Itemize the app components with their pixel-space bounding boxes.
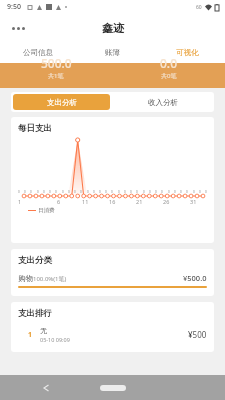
button[interactable]: 收入分析 <box>112 92 214 112</box>
staticText: 0 <box>74 190 76 194</box>
staticText: 支出分析 <box>47 98 77 107</box>
staticText: 0 <box>118 190 120 194</box>
staticText: 0 <box>30 190 32 194</box>
staticText: 0 <box>93 190 95 194</box>
staticText: 0 <box>168 190 170 194</box>
staticText: 0 <box>180 190 182 194</box>
staticText: 0 <box>24 190 26 194</box>
button[interactable]: 可视化 <box>150 42 225 63</box>
staticText: 0 <box>199 190 201 194</box>
staticText: 0 <box>161 190 163 194</box>
staticText: 0 <box>205 190 207 194</box>
staticText: 无 <box>40 326 47 335</box>
staticText: 0 <box>124 190 126 194</box>
staticText: 11 <box>82 198 89 205</box>
staticText: 0 <box>155 190 157 194</box>
staticText: 0 <box>136 190 138 194</box>
staticText: 05-10 09:09 <box>40 336 70 343</box>
button[interactable]: 账簿 <box>75 42 150 63</box>
staticText: 1 <box>18 198 22 205</box>
staticText: 0 <box>99 190 101 194</box>
staticText: 0 <box>143 190 145 194</box>
staticText: 账簿 <box>105 48 120 57</box>
staticText: 0 <box>80 190 82 194</box>
staticText: 0 <box>68 190 70 194</box>
staticText: 100.0%(1笔) <box>33 275 67 283</box>
staticText: 6 <box>57 198 61 205</box>
staticText: 每日支出 <box>18 123 52 134</box>
staticText: 16 <box>109 198 116 205</box>
staticText: 31 <box>190 198 197 205</box>
staticText: 500.0 <box>41 55 72 71</box>
staticText: 0 <box>62 190 64 194</box>
staticText: 公司信息 <box>23 48 53 57</box>
staticText: 0.0 <box>160 55 177 71</box>
button[interactable]: More options <box>8 18 28 38</box>
staticText: 购物 <box>18 274 33 283</box>
staticText: 0 <box>186 190 188 194</box>
staticText: 1 <box>28 330 33 340</box>
staticText: 日消费 <box>38 207 55 214</box>
staticText: 0 <box>43 190 45 194</box>
staticText: 0 <box>49 190 51 194</box>
button[interactable]: Back <box>40 381 54 395</box>
staticText: 0 <box>18 190 20 194</box>
staticText: 0 <box>111 190 113 194</box>
staticText: 0 <box>55 190 57 194</box>
staticText: 0 <box>174 190 176 194</box>
staticText: 0 <box>130 190 132 194</box>
staticText: 60 <box>196 4 202 11</box>
button[interactable]: Home <box>100 385 126 391</box>
staticText: 9:50 <box>7 2 21 12</box>
staticText: 支出排行 <box>18 308 52 319</box>
staticText: 0 <box>105 190 107 194</box>
staticText: 0 <box>37 190 39 194</box>
staticText: 收入分析 <box>148 98 178 107</box>
staticText: 支出分类 <box>18 255 52 266</box>
staticText: ¥500 <box>188 329 207 340</box>
staticText: 0 <box>193 190 195 194</box>
staticText: 鑫迹 <box>102 21 124 35</box>
staticText: 21 <box>136 198 143 205</box>
staticText: 共1笔 <box>48 72 64 80</box>
button[interactable]: 购物 <box>18 273 207 288</box>
staticText: 可视化 <box>176 48 199 57</box>
staticText: 0 <box>87 190 89 194</box>
button[interactable]: 支出分析 <box>13 94 110 110</box>
button[interactable]: 公司信息 <box>0 42 75 63</box>
staticText: 共0笔 <box>161 72 177 80</box>
staticText: 26 <box>163 198 170 205</box>
staticText: 0 <box>149 190 151 194</box>
staticText: ¥500.0 <box>183 273 207 283</box>
button[interactable]: 1 <box>18 326 207 343</box>
